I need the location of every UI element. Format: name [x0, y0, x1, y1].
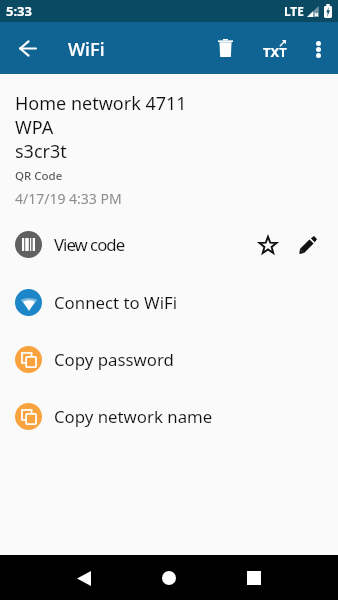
button[interactable]: Home: [147, 556, 191, 600]
staticText: View code: [54, 233, 125, 256]
staticText: 4/17/19 4:33 PM: [15, 189, 122, 208]
button[interactable]: View code: [0, 216, 338, 273]
staticText: 5:33: [6, 2, 32, 20]
button[interactable]: Copy password: [0, 331, 338, 388]
staticText: WiFi: [68, 37, 105, 62]
button[interactable]: Delete: [207, 30, 243, 66]
staticText: TXT: [263, 43, 287, 61]
button[interactable]: Back: [62, 556, 106, 600]
staticText: Copy network name: [54, 405, 213, 428]
button[interactable]: Recent apps: [232, 556, 276, 600]
staticText: Copy password: [54, 348, 174, 371]
staticText: Connect to WiFi: [54, 291, 178, 314]
button[interactable]: Navigate up: [10, 31, 44, 65]
button[interactable]: Edit: [288, 225, 328, 265]
button[interactable]: More options: [300, 31, 336, 67]
button[interactable]: Export as text file: [258, 31, 294, 67]
staticText: Home network 4711 WPA s3cr3t: [15, 91, 187, 163]
staticText: QR Code: [15, 168, 63, 184]
button[interactable]: Copy network name: [0, 388, 338, 445]
button[interactable]: Connect to WiFi: [0, 274, 338, 331]
staticText: LTE: [284, 3, 304, 19]
button[interactable]: Add to favorites: [248, 225, 288, 265]
